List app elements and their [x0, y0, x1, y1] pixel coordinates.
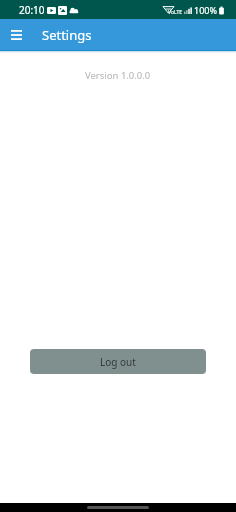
other: Home gesture bar	[87, 506, 149, 509]
button[interactable]: Log out	[30, 349, 206, 374]
staticText: 100%	[194, 4, 217, 16]
staticText: Log out	[100, 355, 136, 369]
staticText: 20:10	[19, 3, 45, 17]
staticText: Version 1.0.0.0	[85, 69, 151, 82]
staticText: Settings	[42, 26, 92, 44]
button[interactable]: Open navigation menu	[0, 19, 31, 50]
staticText: VoLTE	[168, 9, 183, 16]
